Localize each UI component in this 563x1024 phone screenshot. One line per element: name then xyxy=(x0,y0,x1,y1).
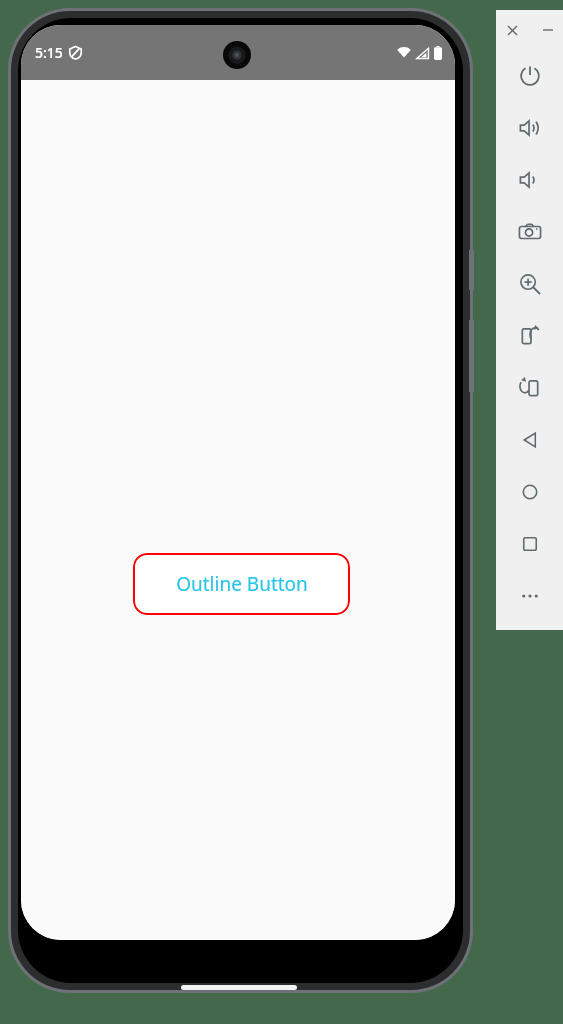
staticText: 5:15 xyxy=(35,43,63,62)
staticText: Outline Button xyxy=(176,571,308,597)
button[interactable]: Rotate left xyxy=(496,310,563,362)
button[interactable]: Volume up xyxy=(496,102,563,154)
button[interactable]: Screenshot xyxy=(496,206,563,258)
button[interactable]: Overview xyxy=(496,518,563,570)
button[interactable]: Home xyxy=(496,466,563,518)
button[interactable]: Outline Button xyxy=(133,553,350,615)
button[interactable]: Minimize xyxy=(537,19,559,41)
button[interactable]: Close xyxy=(501,19,523,41)
button[interactable]: Back xyxy=(496,414,563,466)
button[interactable]: Volume down xyxy=(496,154,563,206)
button[interactable]: Power xyxy=(496,50,563,102)
button[interactable]: Rotate right xyxy=(496,362,563,414)
button[interactable]: Zoom xyxy=(496,258,563,310)
button[interactable]: More xyxy=(496,570,563,622)
